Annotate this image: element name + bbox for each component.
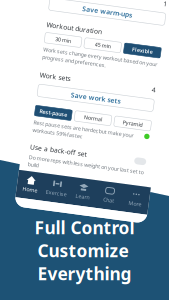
staticText: Use a back-off set [38, 150, 95, 159]
button[interactable]: Save warm-ups [38, 5, 155, 17]
button[interactable]: 45 min [78, 40, 115, 50]
staticText: Save warm-ups [71, 6, 121, 15]
staticText: Do more reps with less weight on your la… [38, 162, 154, 176]
button[interactable]: Flexible [118, 40, 155, 50]
staticText: Save work sets [71, 93, 121, 102]
staticText: Learn [89, 194, 103, 201]
staticText: Customize Everything [37, 239, 131, 285]
button[interactable]: Chat [110, 184, 136, 201]
button[interactable]: Normal [78, 113, 115, 124]
staticText: Pyramid [126, 115, 146, 122]
button[interactable]: Pyramid [118, 113, 155, 124]
staticText: Work sets change every workout based on … [38, 53, 153, 60]
button[interactable]: 30 min [38, 40, 75, 50]
staticText: Rest-pause [42, 115, 70, 122]
button[interactable]: Rest-pause [38, 113, 75, 124]
button[interactable]: Learn [83, 184, 109, 201]
staticText: Normal [87, 115, 105, 122]
staticText: Exercise [59, 194, 80, 201]
button[interactable]: Exercise [57, 184, 83, 201]
staticText: Work sets [38, 78, 69, 87]
staticText: More [143, 194, 156, 201]
staticText: workouts 59% faster. [38, 134, 88, 141]
button[interactable]: More [136, 184, 162, 201]
staticText: 45 min [88, 41, 104, 48]
button[interactable]: Home [30, 184, 56, 201]
staticText: Rest pause sets are harder, but make you… [38, 127, 139, 134]
staticText: Flexible [126, 41, 147, 48]
staticText: 30 min [48, 41, 64, 48]
staticText: progress and preferences. [38, 61, 102, 68]
button[interactable]: Save work sets [38, 92, 155, 104]
staticText: Workout duration [38, 27, 94, 36]
staticText: Full Control [34, 216, 134, 239]
staticText: Home [36, 194, 51, 201]
